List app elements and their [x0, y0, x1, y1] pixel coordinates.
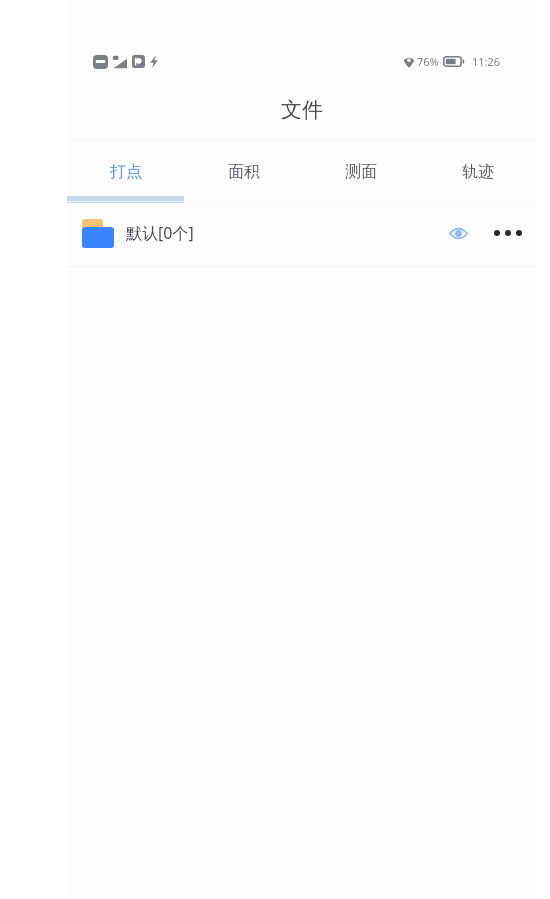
- button[interactable]: 默认[0个]: [67, 203, 536, 263]
- staticText: 打点: [110, 162, 142, 182]
- staticText: 轨迹: [462, 162, 494, 182]
- staticText: 文件: [281, 97, 323, 123]
- button[interactable]: 测面: [302, 148, 419, 196]
- staticText: 面积: [228, 162, 260, 182]
- button[interactable]: 面积: [185, 148, 302, 196]
- button[interactable]: 轨迹: [419, 148, 536, 196]
- button[interactable]: Toggle visibility: [439, 214, 477, 252]
- button[interactable]: 文件: [67, 88, 536, 132]
- staticText: 11:26: [472, 54, 501, 69]
- staticText: 76%: [417, 54, 439, 69]
- button[interactable]: More options: [489, 214, 527, 252]
- staticText: 测面: [345, 162, 377, 182]
- button[interactable]: 打点: [67, 148, 185, 196]
- staticText: 默认[0个]: [126, 222, 194, 244]
